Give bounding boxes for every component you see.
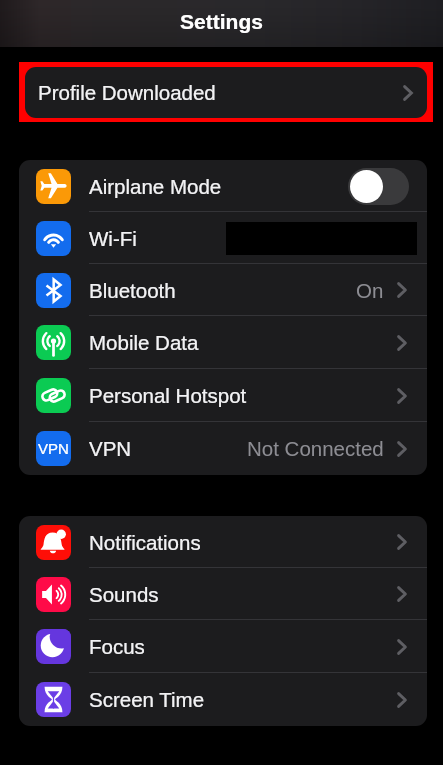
staticText: Bluetooth	[89, 279, 176, 302]
staticText: Focus	[89, 635, 145, 658]
button[interactable]: Wi-Fi	[19, 212, 427, 264]
staticText: Profile Downloaded	[38, 81, 216, 104]
staticText: Airplane Mode	[89, 175, 222, 198]
staticText: Wi-Fi	[89, 227, 137, 250]
staticText: On	[356, 279, 384, 302]
staticText: Settings	[180, 10, 263, 33]
staticText: Sounds	[89, 583, 159, 606]
button[interactable]: Airplane Mode toggle	[348, 168, 409, 205]
staticText: Mobile Data	[89, 331, 199, 354]
button[interactable]: VPN	[19, 422, 427, 475]
button[interactable]: Notifications	[19, 516, 427, 568]
staticText: Screen Time	[89, 688, 205, 711]
button[interactable]: Bluetooth	[19, 264, 427, 316]
staticText: VPN	[38, 440, 69, 457]
staticText: Notifications	[89, 531, 201, 554]
staticText: Personal Hotspot	[89, 384, 247, 407]
staticText: Not Connected	[247, 437, 384, 460]
button[interactable]: Screen Time	[19, 673, 427, 726]
button[interactable]: Airplane Mode	[19, 160, 427, 212]
button[interactable]: Focus	[19, 620, 427, 673]
button[interactable]: Personal Hotspot	[19, 369, 427, 422]
button[interactable]: Mobile Data	[19, 316, 427, 369]
button[interactable]: Sounds	[19, 568, 427, 620]
button[interactable]: Profile Downloaded	[25, 67, 427, 118]
staticText: VPN	[89, 437, 132, 460]
